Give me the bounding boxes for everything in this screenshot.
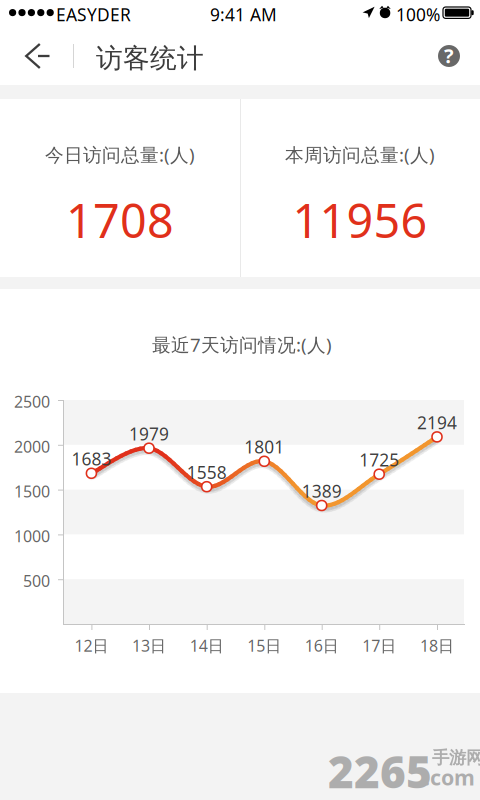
staticText: 18日 — [420, 635, 454, 656]
staticText: 11956 — [292, 189, 427, 251]
staticText: 15日 — [247, 635, 281, 656]
staticText: 2500 — [14, 391, 50, 412]
staticText: 最近7天访问情况:(人) — [152, 332, 332, 357]
staticText: 访客统计 — [96, 42, 204, 75]
staticText: EASYDER — [56, 3, 131, 26]
staticText: 1725 — [359, 448, 399, 471]
button[interactable]: 返回 — [0, 25, 62, 85]
staticText: 2194 — [417, 411, 457, 434]
staticText: 12日 — [74, 635, 108, 656]
staticText: ? — [444, 42, 454, 69]
staticText: 1558 — [187, 461, 227, 484]
staticText: 1683 — [71, 447, 111, 470]
staticText: 500 — [23, 570, 50, 591]
staticText: 1500 — [14, 481, 50, 502]
staticText: 17日 — [362, 635, 396, 656]
staticText: 13日 — [132, 635, 166, 656]
staticText: 2000 — [14, 436, 50, 457]
staticText: 1000 — [14, 525, 50, 547]
staticText: 1708 — [66, 189, 174, 251]
staticText: .com — [424, 763, 475, 791]
staticText: 本周访问总量:(人) — [285, 142, 435, 167]
staticText: 100% — [396, 3, 440, 26]
staticText: 2265 — [328, 742, 432, 800]
staticText: 9:41 AM — [210, 3, 277, 26]
staticText: 今日访问总量:(人) — [45, 142, 195, 167]
staticText: 手游网 — [432, 747, 480, 768]
staticText: 1979 — [129, 422, 169, 445]
staticText: 1801 — [244, 435, 284, 458]
staticText: 1389 — [302, 479, 342, 502]
staticText: 14日 — [190, 635, 224, 656]
staticText: 16日 — [305, 635, 339, 656]
button[interactable]: 帮助 — [424, 25, 476, 85]
